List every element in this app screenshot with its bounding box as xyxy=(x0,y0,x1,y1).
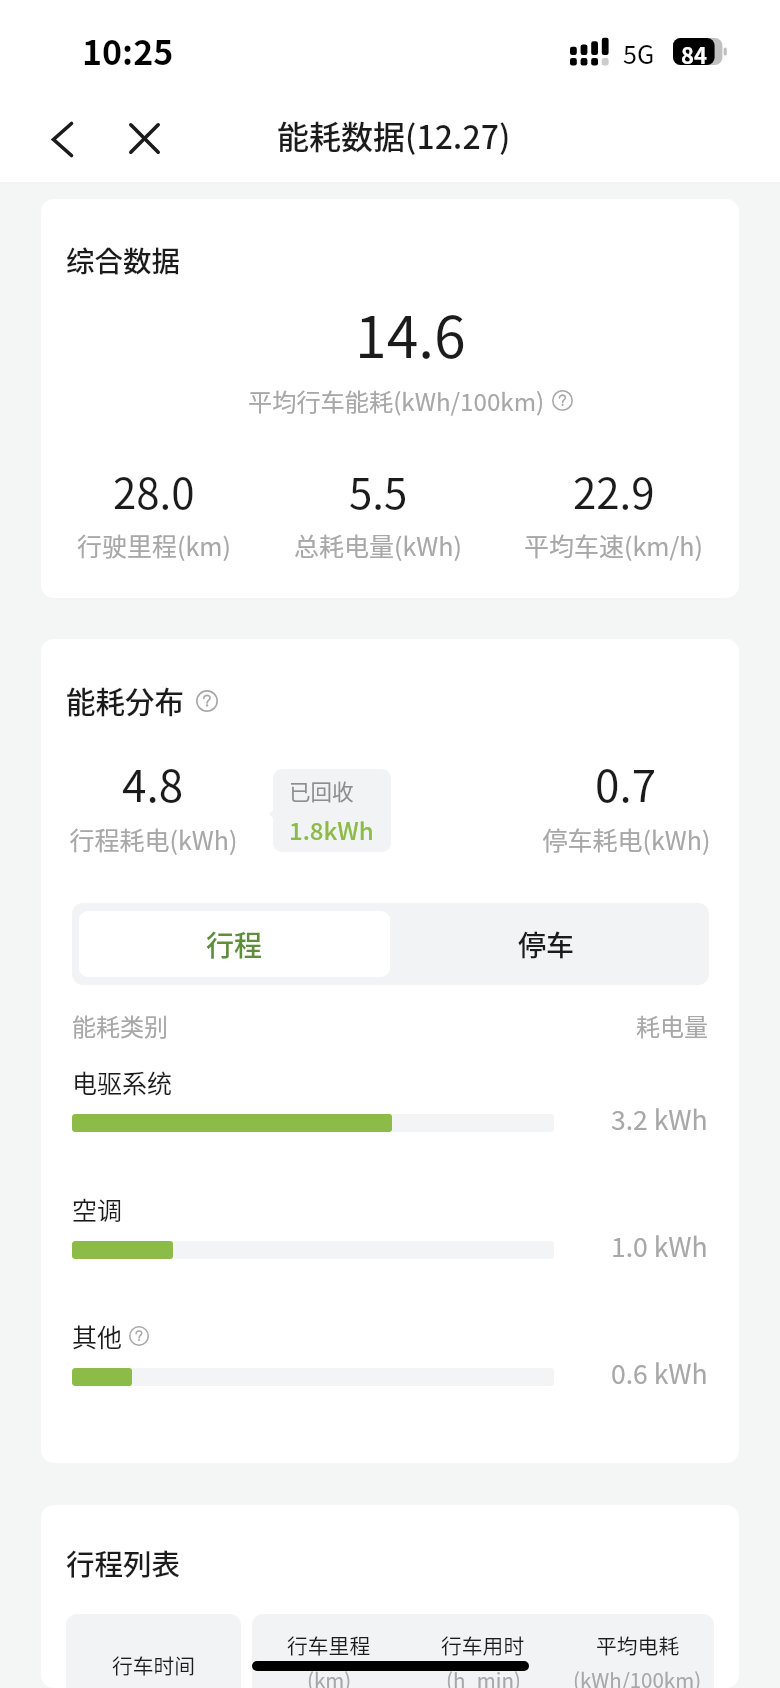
staticText: 0.6 kWh xyxy=(611,1353,708,1391)
button[interactable]: 行程 xyxy=(79,911,390,977)
staticText: (h_min) xyxy=(446,1664,521,1688)
button[interactable]: Close xyxy=(109,103,179,173)
staticText: 28.0 xyxy=(113,460,195,521)
staticText: 耗电量 xyxy=(636,1008,708,1043)
staticText: 平均电耗 xyxy=(596,1630,680,1660)
staticText: 能耗类别 xyxy=(72,1008,168,1043)
staticText: 14.6 xyxy=(355,292,466,375)
staticText: 1.8kWh xyxy=(289,812,374,847)
staticText: 5.5 xyxy=(349,460,408,521)
staticText: 1.0 kWh xyxy=(611,1226,708,1264)
staticText: 空调 xyxy=(72,1191,123,1227)
staticText: 0.7 xyxy=(595,751,657,815)
staticText: 10:25 xyxy=(82,26,174,75)
staticText: (km) xyxy=(307,1664,352,1688)
staticText: 行驶里程(km) xyxy=(77,527,231,563)
staticText: 总耗电量(kWh) xyxy=(294,527,462,563)
staticText: 能耗数据(12.27) xyxy=(277,112,511,158)
button[interactable]: Back xyxy=(27,104,97,174)
staticText: 84 xyxy=(681,38,707,65)
staticText: 平均车速(km/h) xyxy=(524,527,703,563)
button[interactable]: 停车 xyxy=(387,903,706,985)
staticText: 行车用时 xyxy=(441,1630,525,1660)
staticText: 行车里程 xyxy=(287,1630,371,1660)
staticText: 行程 xyxy=(206,924,263,965)
staticText: 5G xyxy=(623,35,655,71)
staticText: 3.2 kWh xyxy=(611,1099,708,1137)
staticText: 电驱系统 xyxy=(72,1064,173,1100)
staticText: 其他 xyxy=(72,1318,123,1354)
staticText: 行程耗电(kWh) xyxy=(66,821,241,857)
staticText: 平均行车能耗(kWh/100km) xyxy=(248,383,545,418)
staticText: 综合数据 xyxy=(66,239,181,280)
staticText: 22.9 xyxy=(573,460,655,521)
button[interactable]: 行车时间 xyxy=(66,1614,241,1688)
staticText: 停车 xyxy=(518,924,575,965)
staticText: 行车时间 xyxy=(66,1650,241,1680)
staticText: 行程列表 xyxy=(66,1542,181,1583)
staticText: 已回收 xyxy=(289,775,354,806)
staticText: 4.8 xyxy=(122,751,184,815)
staticText: 能耗分布 xyxy=(66,679,185,722)
staticText: 停车耗电(kWh) xyxy=(539,821,714,857)
staticText: (kWh/100km) xyxy=(573,1664,702,1688)
